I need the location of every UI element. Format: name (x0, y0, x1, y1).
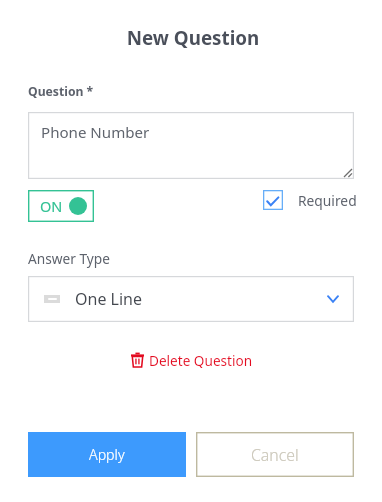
staticText: Phone Number (41, 122, 150, 143)
staticText: One Line (75, 288, 142, 310)
staticText: New Question (2, 25, 382, 51)
other: Expand dropdown (327, 295, 339, 303)
button[interactable]: Apply (28, 432, 186, 477)
button[interactable]: Delete Question (1, 351, 382, 368)
staticText: Delete Question (149, 351, 253, 368)
staticText: Required (298, 191, 357, 210)
staticText: ON (40, 196, 63, 216)
button[interactable]: ON (28, 190, 94, 222)
staticText: Question * (28, 83, 94, 100)
staticText: Cancel (251, 444, 299, 466)
button[interactable]: Required (263, 190, 357, 210)
staticText: Apply (89, 445, 125, 464)
button[interactable]: Cancel (196, 432, 354, 477)
staticText: Answer Type (28, 249, 110, 268)
button[interactable]: Phone Number (28, 112, 354, 179)
button[interactable]: One Line (28, 276, 354, 322)
